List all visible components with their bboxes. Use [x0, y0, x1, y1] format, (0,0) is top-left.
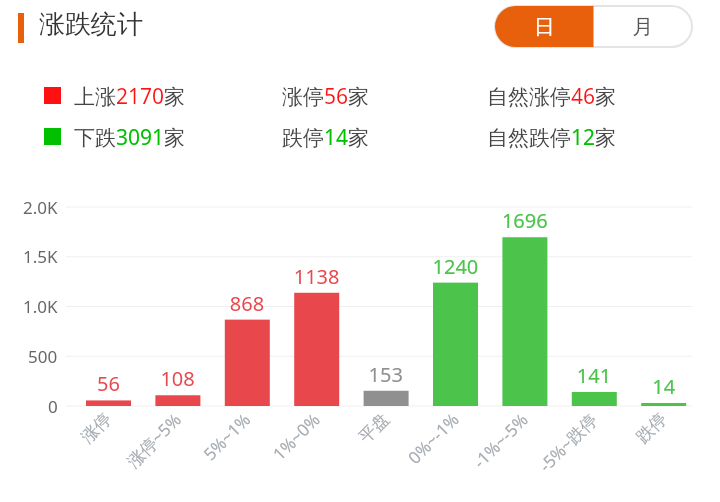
button[interactable]: 月 Monthly view	[594, 6, 692, 47]
button[interactable]: 日 Daily view	[495, 6, 594, 47]
